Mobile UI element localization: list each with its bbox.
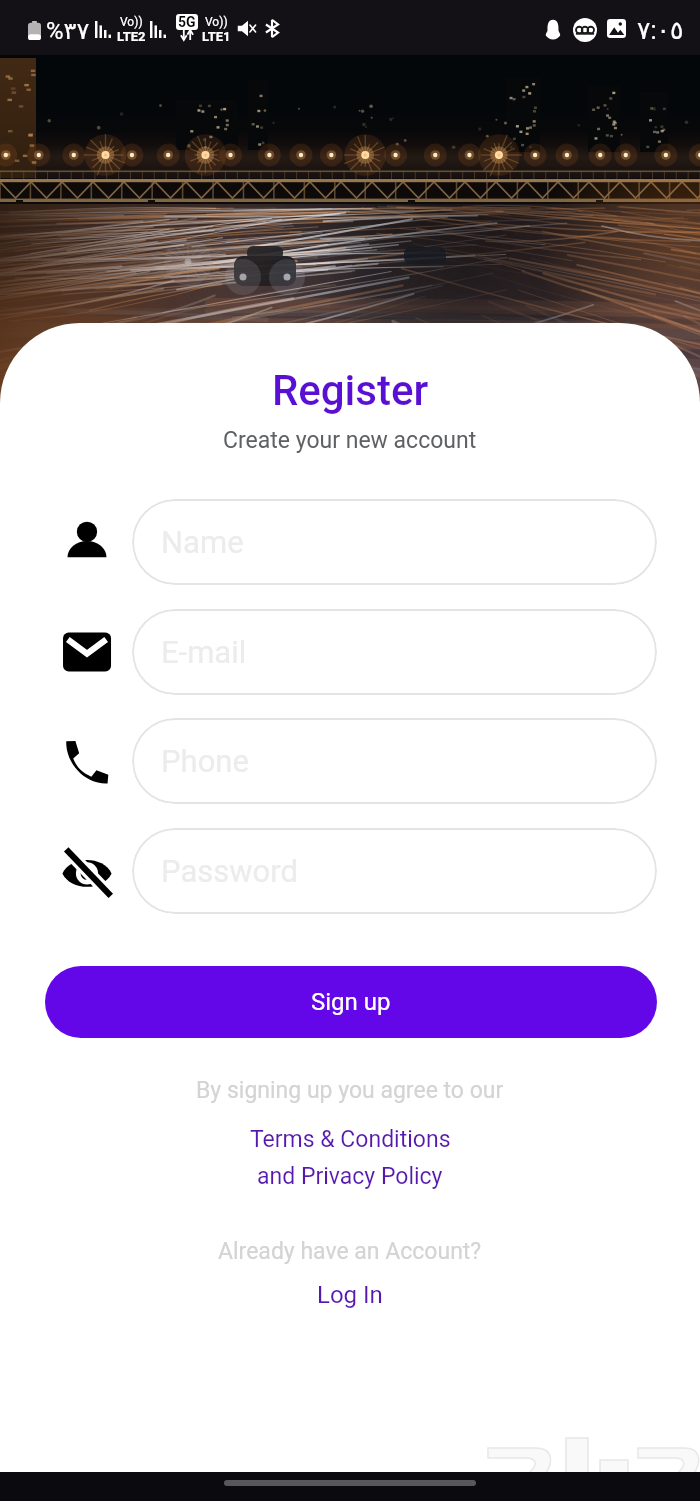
other: Bluetooth (264, 19, 280, 38)
staticText: Password (161, 853, 298, 889)
other: Ringer muted (237, 20, 256, 37)
other: Phone (60, 734, 114, 788)
staticText: LTE2 (117, 29, 146, 44)
button[interactable]: and Privacy Policy (251, 1161, 449, 1192)
staticText: LTE1 (202, 29, 231, 44)
button[interactable]: Terms & Conditions (244, 1124, 457, 1155)
staticText: Register (272, 366, 429, 415)
button[interactable]: Phone (132, 718, 657, 804)
other: E-mail (60, 625, 114, 679)
other: Snapchat (545, 19, 561, 40)
staticText: Already have an Account? (218, 1238, 482, 1265)
button[interactable]: Password (132, 828, 657, 914)
other: Notification (573, 18, 597, 42)
button[interactable]: E-mail (132, 609, 657, 695)
button[interactable]: Name (132, 499, 657, 585)
staticText: ٧:٠٥ (637, 16, 684, 45)
staticText: 5G (178, 14, 196, 30)
staticText: Terms & Conditions (250, 1126, 451, 1153)
other: Show password (60, 844, 114, 898)
other: Name (60, 515, 114, 569)
staticText: Log In (317, 1281, 383, 1309)
staticText: Sign up (311, 988, 391, 1016)
staticText: E-mail (161, 634, 247, 670)
other: Screenshot (607, 19, 626, 38)
button[interactable]: Log In (311, 1279, 389, 1311)
staticText: By signing up you agree to our (196, 1077, 504, 1104)
staticText: Vo)) (120, 15, 143, 29)
staticText: Vo)) (205, 15, 228, 29)
button[interactable]: Sign up (45, 966, 657, 1038)
staticText: Name (161, 524, 244, 560)
staticText: and Privacy Policy (257, 1163, 443, 1190)
staticText: %٣٧ (46, 17, 90, 45)
staticText: Create your new account (223, 427, 477, 454)
staticText: Phone (161, 743, 249, 779)
